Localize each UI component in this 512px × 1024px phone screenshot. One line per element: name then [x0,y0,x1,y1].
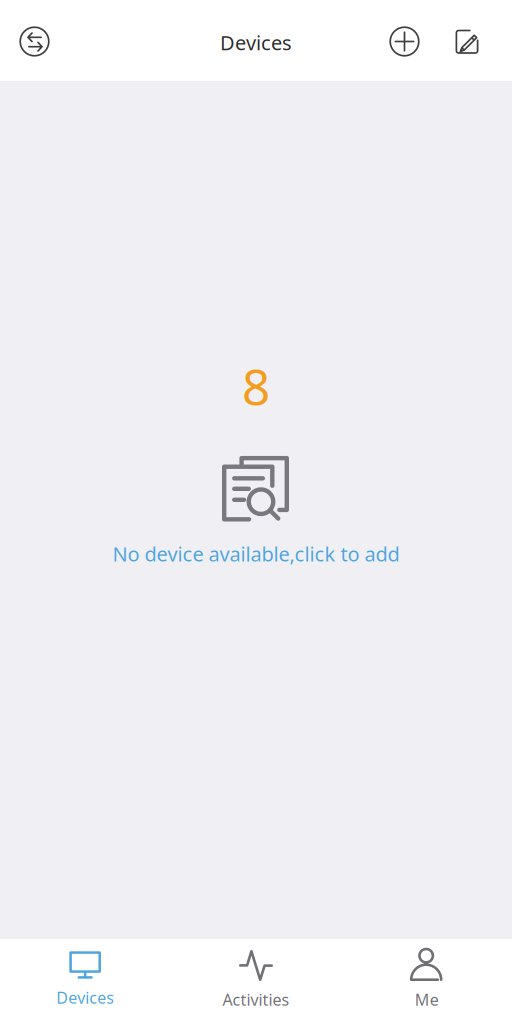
button[interactable]: Edit [430,13,512,68]
button[interactable]: Devices [0,939,171,1024]
staticText: 8 [242,353,270,418]
staticText: Devices [220,29,292,56]
staticText: Activities [222,989,289,1010]
button[interactable]: Me [341,939,512,1024]
staticText: No device available,click to add [112,540,399,567]
button[interactable]: Activities [171,939,341,1024]
button[interactable]: Add device [378,13,430,68]
staticText: Me [415,989,439,1010]
button[interactable]: No device available,click to add [0,455,512,567]
staticText: Devices [56,987,114,1008]
button[interactable]: Switch account [0,13,61,68]
